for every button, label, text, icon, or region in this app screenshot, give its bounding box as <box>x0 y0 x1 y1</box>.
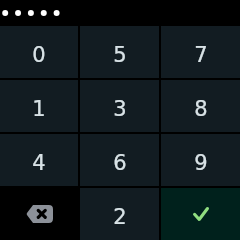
staticText: 6 <box>113 151 127 175</box>
staticText: 3 <box>113 97 127 121</box>
staticText: 0 <box>32 43 46 67</box>
staticText: 9 <box>194 151 208 175</box>
button[interactable]: 8 <box>161 80 240 132</box>
button[interactable]: 0 <box>0 26 78 78</box>
staticText: 7 <box>194 43 208 67</box>
button[interactable]: 6 <box>80 134 159 186</box>
button[interactable]: Confirm <box>161 188 240 240</box>
button[interactable]: 3 <box>80 80 159 132</box>
staticText: 8 <box>194 97 208 121</box>
button[interactable]: 9 <box>161 134 240 186</box>
button[interactable]: 1 <box>0 80 78 132</box>
button[interactable]: 5 <box>80 26 159 78</box>
button[interactable]: 4 <box>0 134 78 186</box>
button[interactable]: 2 <box>80 188 159 240</box>
staticText: 5 <box>113 43 127 67</box>
staticText: 2 <box>113 205 127 229</box>
button[interactable]: Backspace <box>0 188 78 240</box>
staticText: 4 <box>32 151 46 175</box>
button[interactable]: 7 <box>161 26 240 78</box>
staticText: 1 <box>32 97 46 121</box>
